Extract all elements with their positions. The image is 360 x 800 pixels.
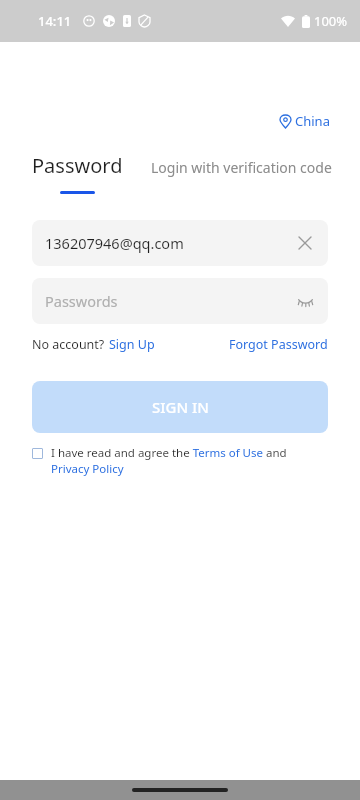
staticText: Sign Up [109, 336, 155, 353]
staticText: Login with verification code [151, 158, 332, 177]
staticText: Passwords [45, 291, 118, 311]
staticText: No account? [32, 336, 105, 353]
button[interactable]: Home [132, 788, 228, 792]
button[interactable]: Agree to terms checkbox [32, 448, 43, 459]
staticText: China [295, 112, 330, 130]
button[interactable]: SIGN IN [32, 381, 328, 433]
button[interactable]: Login with verification code [151, 158, 332, 177]
button[interactable]: Forgot Password [229, 336, 328, 353]
staticText: Forgot Password [229, 336, 328, 353]
button[interactable]: Show password [292, 288, 318, 314]
button[interactable]: I have read and agree the Terms of Use a… [51, 445, 324, 476]
button[interactable]: Password [32, 152, 123, 179]
button[interactable]: Sign Up [109, 336, 155, 353]
staticText: Password [32, 152, 123, 179]
button[interactable]: 136207946@qq.com [32, 220, 328, 266]
staticText: 14:11 [38, 12, 72, 30]
staticText: SIGN IN [152, 397, 209, 417]
button[interactable]: Passwords [32, 278, 328, 324]
staticText: 136207946@qq.com [45, 233, 184, 253]
button[interactable]: Clear email [292, 230, 318, 256]
button[interactable]: China [276, 108, 334, 134]
staticText: 100% [314, 12, 348, 30]
